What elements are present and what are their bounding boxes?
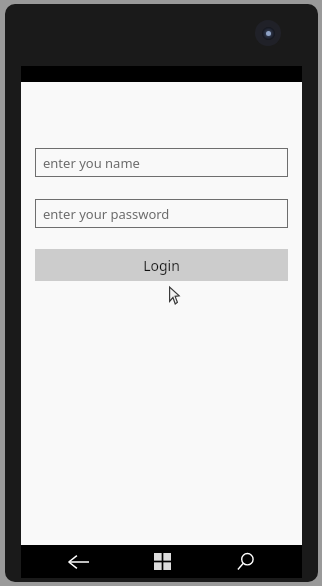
button[interactable]: Search bbox=[221, 545, 269, 578]
button[interactable]: Back bbox=[54, 545, 102, 578]
button[interactable]: enter your password bbox=[35, 199, 288, 228]
button[interactable]: Start bbox=[138, 545, 186, 578]
staticText: enter you name bbox=[43, 154, 140, 172]
button[interactable]: Login bbox=[35, 249, 288, 281]
button[interactable]: enter you name bbox=[35, 148, 288, 177]
staticText: Login bbox=[143, 256, 180, 275]
staticText: enter your password bbox=[43, 205, 170, 223]
